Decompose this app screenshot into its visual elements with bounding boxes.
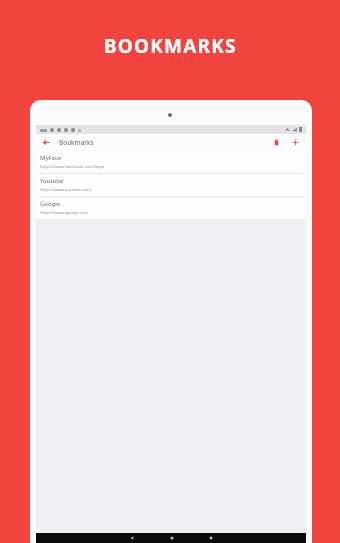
staticText: BOOKMARKS (104, 33, 237, 59)
button[interactable]: MyFace (36, 151, 306, 173)
button[interactable]: Add bookmark (290, 137, 301, 148)
staticText: https://www.google.com (40, 210, 89, 216)
button[interactable]: Back (41, 137, 52, 148)
button[interactable]: Delete (271, 137, 282, 148)
staticText: Google (40, 200, 61, 208)
staticText: https://www.youtube.com (40, 187, 92, 193)
staticText: https://www.facebook.com/login (40, 164, 105, 170)
staticText: Youtube (40, 177, 64, 185)
button[interactable]: Recent apps (207, 534, 215, 542)
button[interactable]: Home (168, 534, 176, 542)
staticText: MyFace (40, 154, 62, 162)
button[interactable]: Youtube (36, 174, 306, 196)
staticText: Bookmarks (59, 138, 94, 147)
button[interactable]: Google (36, 197, 306, 219)
button[interactable]: Back (128, 534, 136, 542)
